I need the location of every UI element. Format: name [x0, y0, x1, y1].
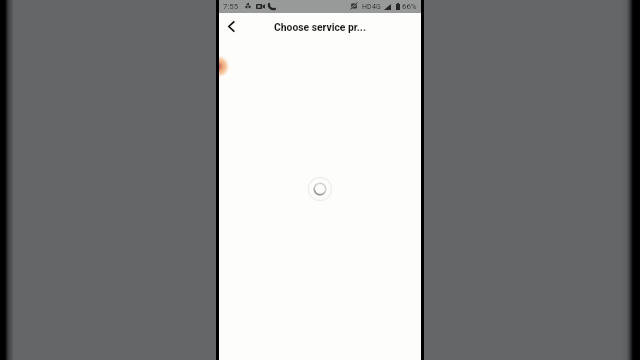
staticText: 4G — [372, 3, 381, 11]
button[interactable]: Back — [219, 12, 243, 40]
staticText: Choose service pr... — [274, 21, 366, 33]
staticText: 7:55 — [223, 2, 239, 11]
staticText: HD — [362, 3, 372, 11]
staticText: 66% — [402, 2, 417, 11]
